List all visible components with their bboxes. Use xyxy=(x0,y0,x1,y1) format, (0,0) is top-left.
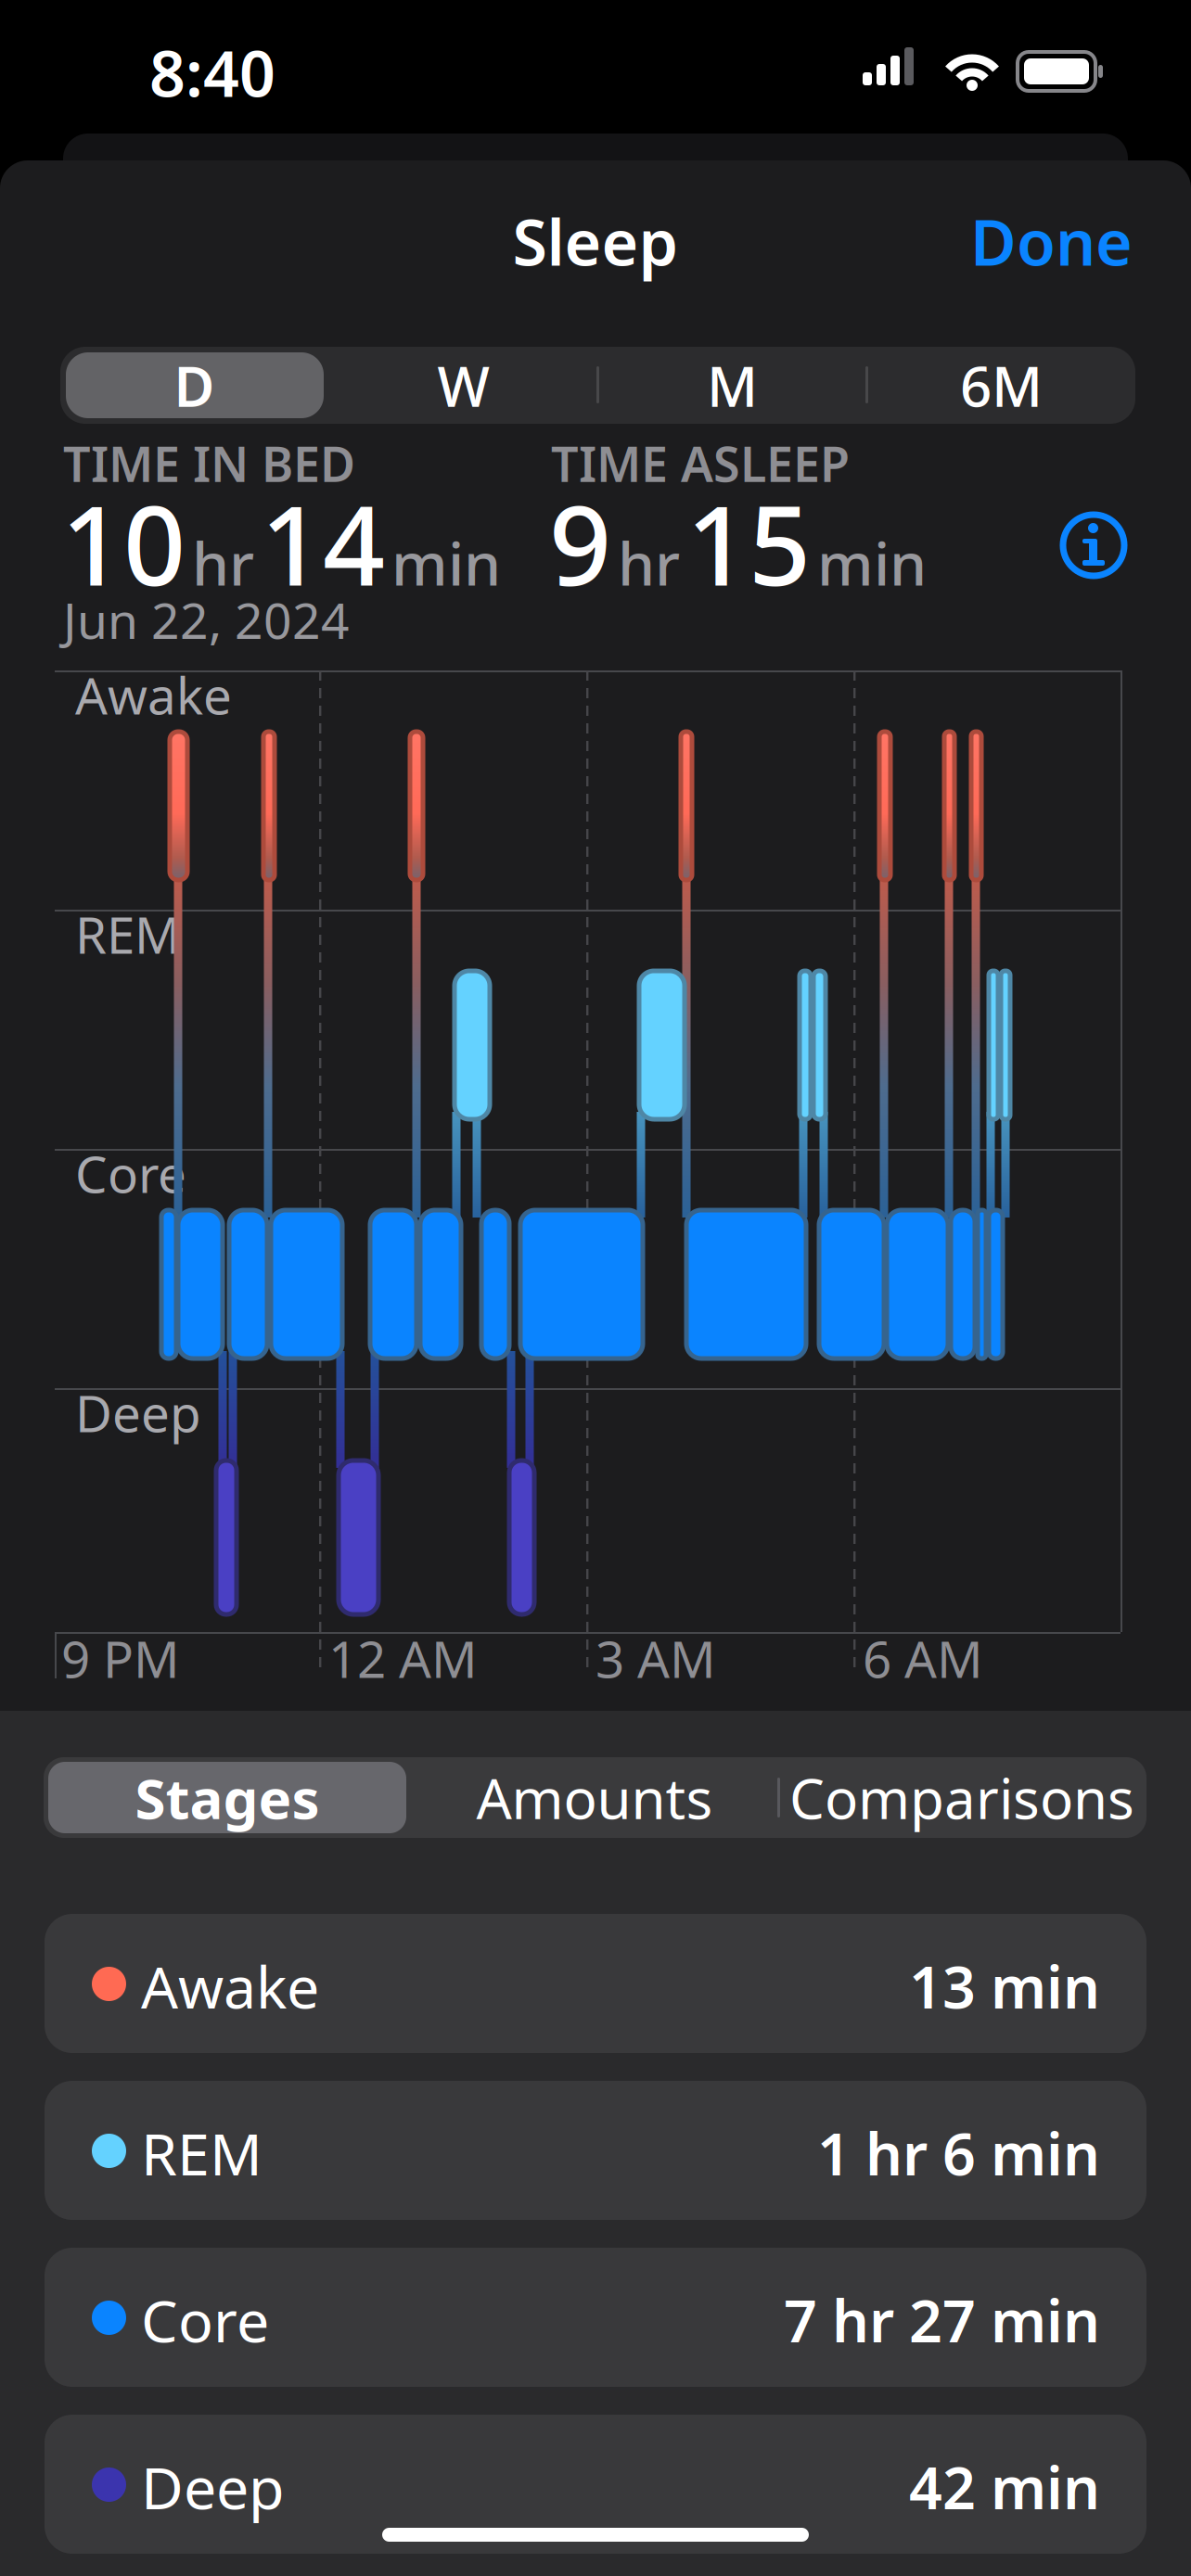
staticText: TIME IN BED xyxy=(63,431,355,495)
staticText: Awake xyxy=(141,1947,319,2024)
staticText: Sleep xyxy=(512,199,679,283)
staticText: 9 xyxy=(549,471,611,616)
button[interactable]: REM xyxy=(45,2081,1146,2220)
staticText: Jun 22, 2024 xyxy=(63,587,350,653)
staticText: 10 xyxy=(61,471,186,616)
staticText: 9 PM xyxy=(61,1625,180,1692)
button[interactable]: Amounts xyxy=(411,1757,778,1838)
staticText: Amounts xyxy=(476,1761,713,1835)
button[interactable]: W xyxy=(329,347,597,424)
staticText: D xyxy=(174,348,215,422)
staticText: Stages xyxy=(135,1761,320,1835)
staticText: Done xyxy=(970,199,1133,283)
staticText: Core xyxy=(141,2281,269,2358)
staticText: Comparisons xyxy=(789,1761,1134,1835)
staticText: Core xyxy=(75,1140,186,1207)
button[interactable]: Comparisons xyxy=(778,1757,1146,1838)
staticText: hr xyxy=(192,523,254,602)
staticText: 6M xyxy=(960,348,1043,422)
staticText: 6 AM xyxy=(863,1625,983,1692)
staticText: Deep xyxy=(75,1379,201,1446)
staticText: 12 AM xyxy=(328,1625,478,1692)
button[interactable]: M xyxy=(598,347,866,424)
staticText: REM xyxy=(141,2114,263,2191)
staticText: REM xyxy=(75,900,181,968)
staticText: 13 min xyxy=(909,1947,1100,2024)
button[interactable]: Core xyxy=(45,2248,1146,2387)
staticText: 8:40 xyxy=(149,31,275,114)
staticText: Deep xyxy=(141,2448,285,2525)
staticText: min xyxy=(817,523,927,602)
staticText: 15 xyxy=(686,471,811,616)
staticText: 14 xyxy=(261,471,385,616)
staticText: 42 min xyxy=(909,2448,1100,2525)
staticText: min xyxy=(391,523,501,602)
staticText: Awake xyxy=(75,661,232,728)
button[interactable]: D xyxy=(60,347,328,424)
staticText: 7 hr 27 min xyxy=(784,2281,1100,2358)
button[interactable]: Awake xyxy=(45,1914,1146,2053)
button[interactable]: 6M xyxy=(867,347,1135,424)
button[interactable]: Deep xyxy=(45,2415,1146,2554)
staticText: hr xyxy=(618,523,680,602)
staticText: 1 hr 6 min xyxy=(817,2114,1100,2191)
staticText: M xyxy=(707,348,758,422)
button[interactable]: Done xyxy=(970,199,1133,283)
staticText: 3 AM xyxy=(595,1625,716,1692)
staticText: W xyxy=(437,348,489,422)
staticText: TIME ASLEEP xyxy=(551,431,850,495)
button[interactable]: About Sleep xyxy=(1063,515,1124,576)
button[interactable]: Stages xyxy=(44,1757,411,1838)
